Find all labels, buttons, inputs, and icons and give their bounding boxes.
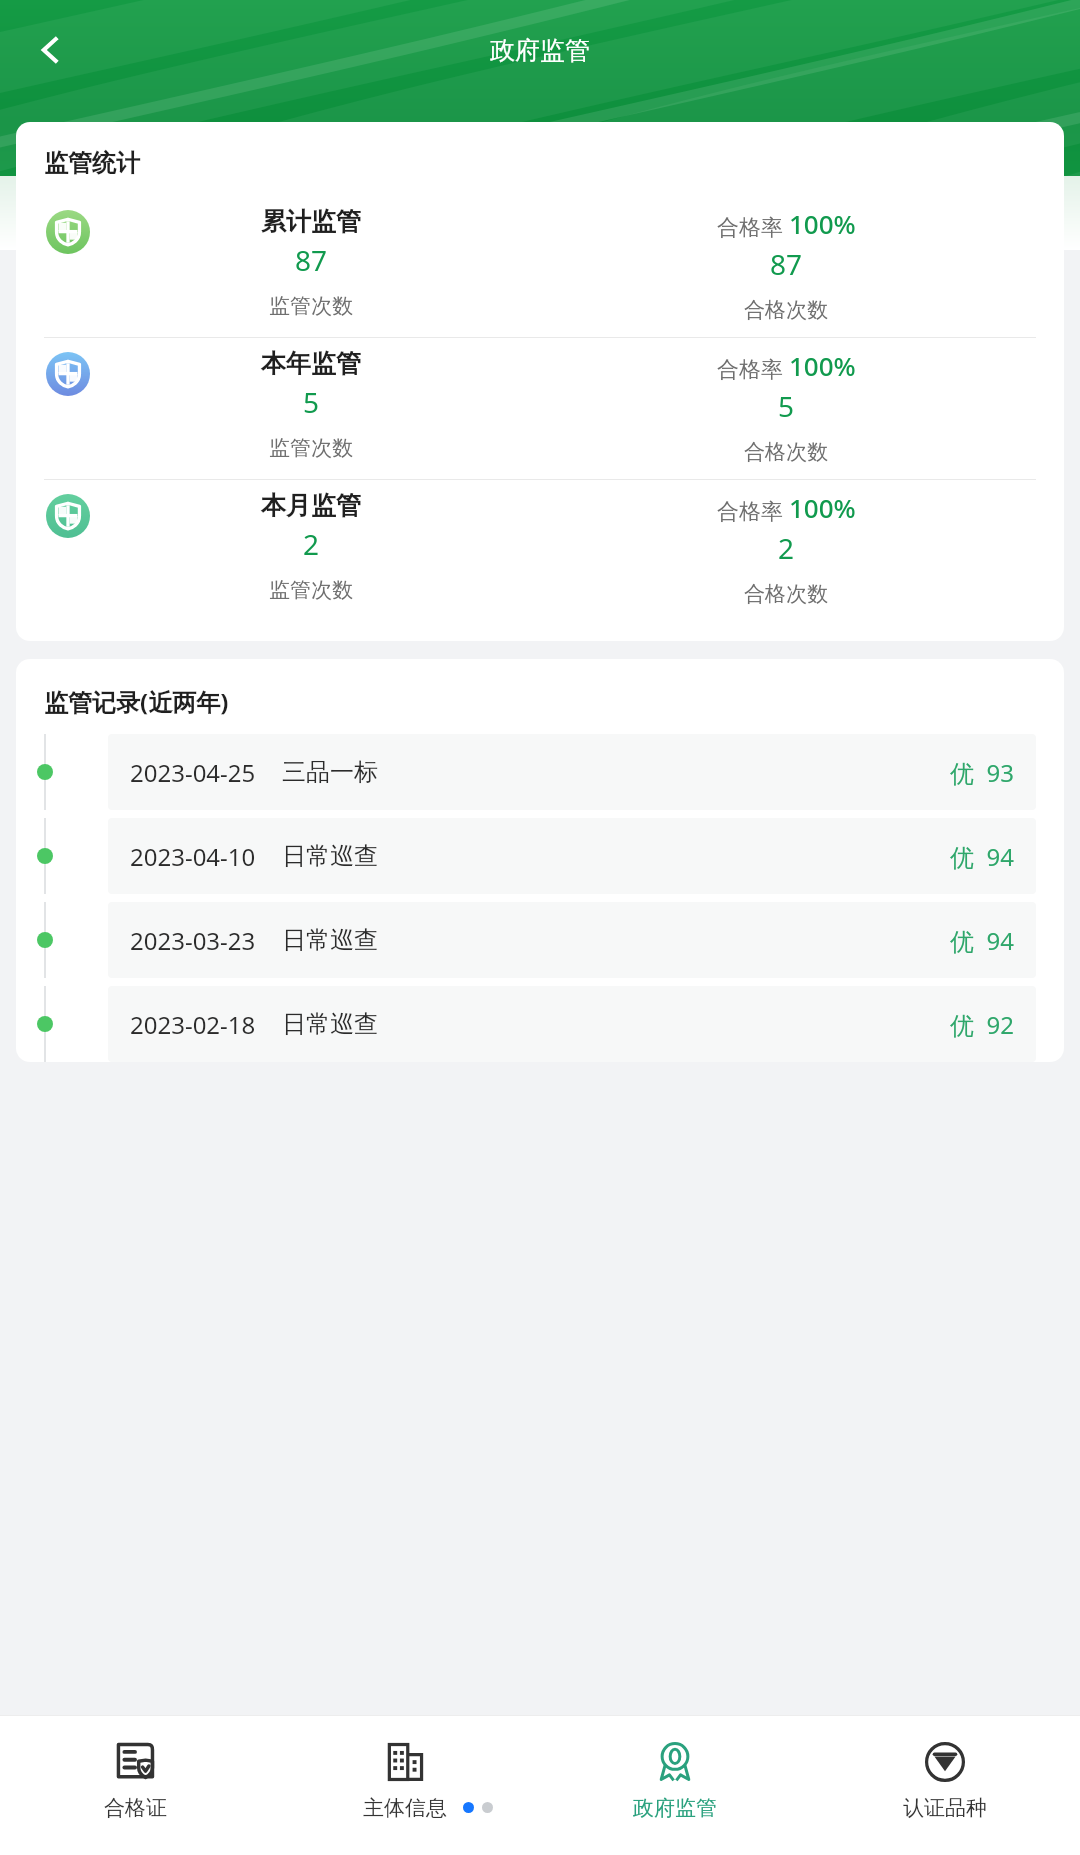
staticText: 监管次数 (269, 577, 353, 603)
button[interactable]: 合格证 (0, 1715, 270, 1855)
staticText: 主体信息 (363, 1795, 447, 1821)
staticText: 监管次数 (269, 435, 353, 461)
button[interactable]: 主体信息 (270, 1715, 540, 1855)
button[interactable]: 2023-02-18 (108, 986, 1036, 1062)
staticText: 合格率 (717, 495, 789, 525)
staticText: 87 (770, 245, 803, 283)
staticText: 2 (778, 529, 795, 567)
button[interactable]: 认证品种 (810, 1715, 1080, 1855)
staticText: 合格次数 (744, 439, 828, 465)
staticText: 100% (789, 490, 856, 525)
staticText: 日常巡查 (282, 1009, 378, 1039)
staticText: 累计监管 (261, 206, 361, 237)
staticText: 2023-02-18 (130, 1008, 256, 1041)
staticText: 监管统计 (44, 148, 140, 178)
button[interactable]: 政府监管 (540, 1715, 810, 1855)
button[interactable]: 2023-04-10 (108, 818, 1036, 894)
button[interactable]: 本月监管 (16, 480, 1064, 621)
staticText: 监管记录(近两年) (44, 685, 229, 718)
staticText: 2023-04-25 (130, 756, 256, 789)
staticText: 100% (789, 348, 856, 383)
staticText: 优 92 (950, 1008, 1014, 1041)
staticText: 100% (789, 206, 856, 241)
staticText: 5 (778, 387, 795, 425)
staticText: 三品一标 (282, 757, 378, 787)
staticText: 日常巡查 (282, 925, 378, 955)
staticText: 87 (295, 241, 328, 279)
staticText: 2023-04-10 (130, 840, 256, 873)
staticText: 政府监管 (490, 35, 590, 66)
button[interactable]: 2023-03-23 (108, 902, 1036, 978)
staticText: 优 93 (950, 756, 1014, 789)
staticText: 合格次数 (744, 581, 828, 607)
staticText: 政府监管 (633, 1795, 717, 1821)
staticText: 合格次数 (744, 297, 828, 323)
button[interactable]: 本年监管 (16, 338, 1064, 479)
staticText: 2 (303, 525, 320, 563)
staticText: 合格证 (104, 1795, 167, 1821)
staticText: 认证品种 (903, 1795, 987, 1821)
button[interactable]: 累计监管 (16, 196, 1064, 337)
staticText: 5 (303, 383, 320, 421)
button[interactable]: Back (18, 18, 82, 82)
staticText: 合格率 (717, 353, 789, 383)
staticText: 本月监管 (261, 490, 361, 521)
staticText: 本年监管 (261, 348, 361, 379)
staticText: 优 94 (950, 924, 1014, 957)
staticText: 合格率 (717, 211, 789, 241)
staticText: 日常巡查 (282, 841, 378, 871)
button[interactable]: 2023-04-25 (108, 734, 1036, 810)
staticText: 监管次数 (269, 293, 353, 319)
staticText: 2023-03-23 (130, 924, 256, 957)
staticText: 优 94 (950, 840, 1014, 873)
